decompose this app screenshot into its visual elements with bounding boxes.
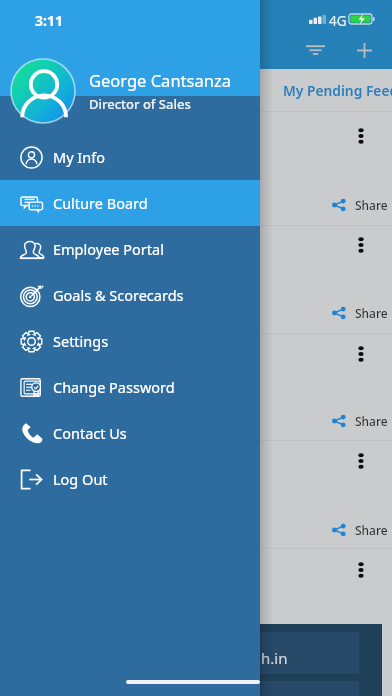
staticText: Goals & Scorecards [53, 285, 184, 305]
button[interactable]: Filter [294, 29, 336, 71]
staticText: Share [355, 413, 388, 429]
staticText: 4G [329, 12, 347, 30]
button[interactable]: More options [0, 111, 392, 225]
button[interactable]: My Info [0, 134, 260, 180]
staticText: Log Out [53, 469, 108, 489]
button[interactable]: More options [345, 229, 377, 261]
staticText: Change Password [53, 377, 175, 397]
staticText: Contact Us [53, 423, 127, 443]
button[interactable]: Add [343, 29, 385, 71]
button[interactable]: More options [0, 548, 392, 633]
button[interactable]: Share [332, 197, 388, 213]
staticText: Director of Sales [89, 95, 191, 113]
button[interactable]: More options [345, 445, 377, 477]
staticText: h.in [261, 648, 288, 668]
button[interactable]: Goals & Scorecards [0, 272, 260, 318]
button[interactable]: Contact Us [0, 410, 260, 456]
button[interactable]: More options [0, 333, 392, 440]
button[interactable]: Employee Portal [0, 226, 260, 272]
staticText: Settings [53, 331, 109, 351]
button[interactable]: My Pending Feeds [261, 69, 392, 111]
staticText: Employee Portal [53, 239, 164, 259]
button[interactable]: Share [332, 305, 388, 321]
button[interactable]: Log Out [0, 456, 260, 502]
staticText: 3:11 [35, 11, 63, 30]
button[interactable]: More options [0, 225, 392, 333]
button[interactable]: More options [345, 554, 377, 586]
button[interactable]: Share [332, 413, 388, 429]
button[interactable]: Culture Board [0, 180, 260, 226]
button[interactable]: Change Password [0, 364, 260, 410]
button[interactable]: Share [332, 522, 388, 538]
staticText: My Info [53, 147, 105, 167]
button[interactable]: Settings [0, 318, 260, 364]
staticText: Share [355, 305, 388, 321]
button[interactable]: More options [345, 338, 377, 370]
staticText: Share [355, 522, 388, 538]
staticText: Share [355, 197, 388, 213]
button[interactable]: More options [345, 120, 377, 152]
button[interactable]: h.in [200, 624, 382, 696]
button[interactable]: More options [0, 440, 392, 548]
staticText: My Pending Feeds [283, 81, 392, 100]
staticText: Culture Board [53, 193, 148, 213]
staticText: George Cantsanza [89, 69, 231, 91]
